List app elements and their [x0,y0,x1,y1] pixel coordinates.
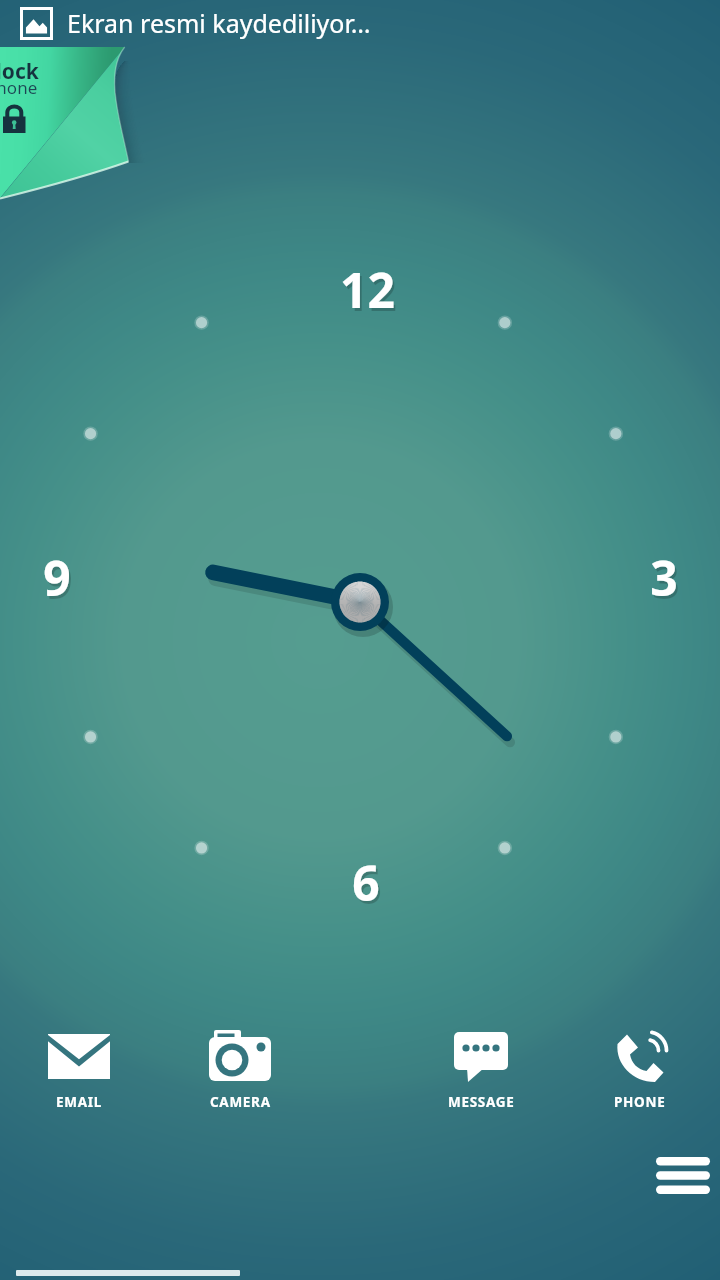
staticText: 9 [43,545,71,610]
staticText: 12 [342,260,397,325]
staticText: MESSAGE [448,1093,515,1111]
button[interactable]: PHONE [565,1018,715,1124]
staticText: 9 [45,548,73,613]
staticText: Ekran resmi kaydediliyor… [67,6,371,40]
staticText: 12 [340,257,395,322]
staticText: 6 [352,850,380,915]
button[interactable]: MESSAGE [406,1018,556,1124]
staticText: Unlock [0,57,39,86]
staticText: EMAIL [56,1093,102,1111]
staticText: CAMERA [210,1093,271,1111]
staticText: your phone [0,76,38,99]
button[interactable]: CAMERA [165,1018,315,1124]
staticText: 3 [650,545,678,610]
staticText: PHONE [614,1093,666,1111]
staticText: 6 [354,853,382,918]
staticText: 3 [652,548,680,613]
button[interactable]: Unlock your phone [0,0,180,230]
button[interactable]: EMAIL [4,1018,154,1124]
button[interactable]: Menu [645,1143,720,1207]
